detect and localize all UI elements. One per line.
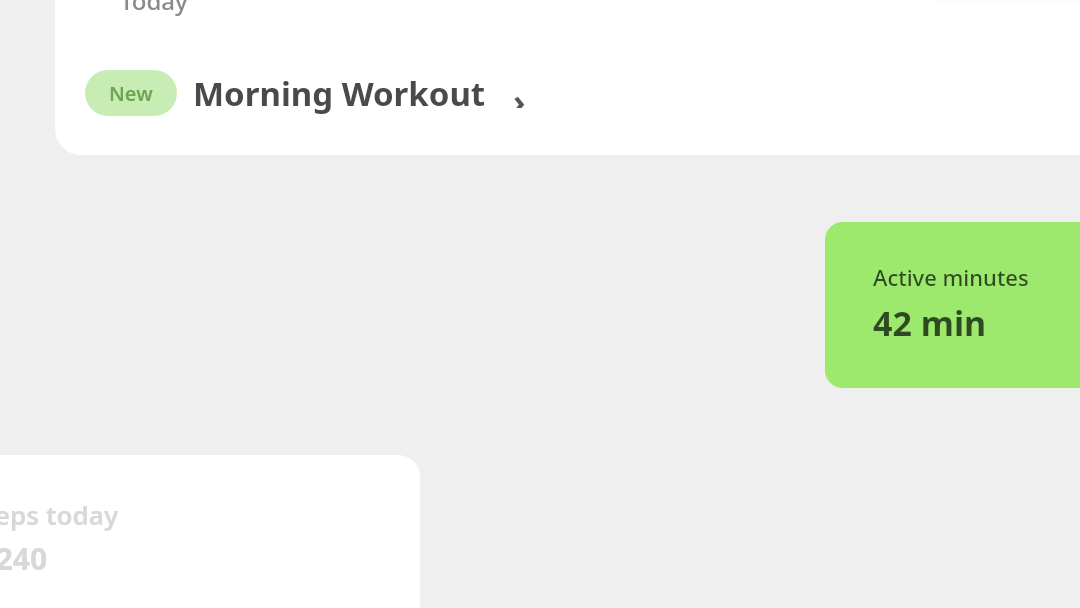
button[interactable]: Steps today <box>0 455 420 608</box>
staticText: 8,240 <box>0 538 48 579</box>
button[interactable]: Active minutes <box>825 222 1080 388</box>
staticText: 42 min <box>873 300 987 346</box>
staticText: Morning Workout <box>193 71 486 116</box>
staticText: New <box>109 80 153 107</box>
button[interactable]: More options <box>504 78 534 108</box>
staticText: Active minutes <box>873 262 1029 292</box>
button[interactable]: New <box>85 70 177 116</box>
staticText: Steps today <box>0 497 119 532</box>
staticText: › <box>513 78 526 108</box>
staticText: Today <box>120 0 188 17</box>
button[interactable]: Today <box>55 0 1080 155</box>
